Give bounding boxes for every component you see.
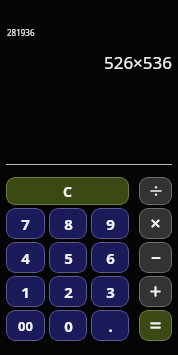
staticText: 4 xyxy=(21,248,30,268)
button[interactable]: Multiply xyxy=(139,208,172,239)
button[interactable]: Add xyxy=(139,276,172,307)
button[interactable]: 2 xyxy=(49,276,87,307)
staticText: 8 xyxy=(64,214,73,234)
button[interactable]: Equals xyxy=(139,310,172,341)
staticText: C xyxy=(63,182,72,201)
staticText: 2 xyxy=(64,282,73,302)
button[interactable]: 9 xyxy=(91,208,129,239)
staticText: 5 xyxy=(64,248,73,268)
staticText: 0 xyxy=(64,316,73,336)
button[interactable]: 7 xyxy=(6,208,45,239)
button[interactable]: 4 xyxy=(6,242,45,273)
button[interactable]: 1 xyxy=(6,276,45,307)
button[interactable]: 5 xyxy=(49,242,87,273)
button[interactable]: 8 xyxy=(49,208,87,239)
staticText: 281936 xyxy=(7,27,35,38)
button[interactable]: . xyxy=(91,310,129,341)
staticText: 3 xyxy=(106,282,115,302)
staticText: . xyxy=(108,316,113,336)
staticText: 526×536 xyxy=(103,51,172,74)
staticText: 1 xyxy=(21,282,30,302)
staticText: 9 xyxy=(106,214,115,234)
button[interactable]: Divide xyxy=(139,177,172,205)
button[interactable]: 0 xyxy=(49,310,87,341)
staticText: 7 xyxy=(21,214,30,234)
staticText: 6 xyxy=(106,248,115,268)
button[interactable]: 3 xyxy=(91,276,129,307)
button[interactable]: Subtract xyxy=(139,242,172,273)
button[interactable]: C xyxy=(6,177,129,205)
button[interactable]: 6 xyxy=(91,242,129,273)
staticText: 00 xyxy=(18,317,33,335)
button[interactable]: 00 xyxy=(6,310,45,341)
